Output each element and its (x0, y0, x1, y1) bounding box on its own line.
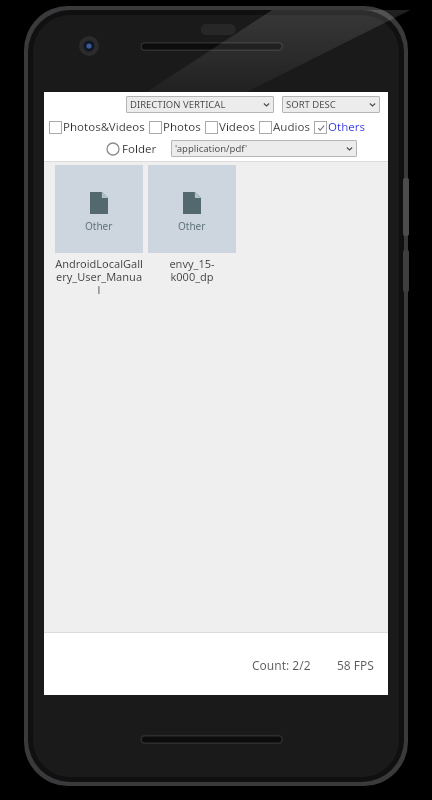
button[interactable]: 'application/pdf' (171, 140, 357, 157)
other: Document (90, 192, 108, 214)
staticText: Other (178, 219, 206, 233)
button[interactable]: SORT DESC (282, 96, 380, 113)
staticText: Audios (273, 119, 310, 135)
button[interactable]: DIRECTION VERTICAL (126, 96, 274, 113)
button[interactable]: Audios (259, 119, 310, 135)
staticText: envy_15-k000_dp (148, 256, 236, 284)
other: Document (183, 192, 201, 214)
button[interactable]: Videos (205, 119, 255, 135)
button[interactable]: Folder (106, 141, 157, 157)
staticText: 'application/pdf' (175, 142, 248, 155)
staticText: Photos (163, 119, 201, 135)
staticText: SORT DESC (286, 98, 336, 111)
button[interactable]: Photos (149, 119, 201, 135)
staticText: DIRECTION VERTICAL (130, 98, 226, 111)
staticText: Photos&Videos (63, 119, 145, 135)
staticText: Others (328, 119, 365, 135)
staticText: Other (85, 219, 113, 233)
staticText: AndroidLocalGallery_User_Manual (55, 256, 143, 297)
button[interactable]: Document (148, 165, 236, 284)
button[interactable]: Others (314, 119, 365, 135)
staticText: Folder (122, 141, 157, 157)
staticText: Count: 2/2 (252, 657, 311, 673)
button[interactable]: Document (55, 165, 143, 297)
button[interactable]: Photos&Videos (49, 119, 145, 135)
staticText: 58 FPS (337, 657, 374, 673)
staticText: Videos (219, 119, 255, 135)
